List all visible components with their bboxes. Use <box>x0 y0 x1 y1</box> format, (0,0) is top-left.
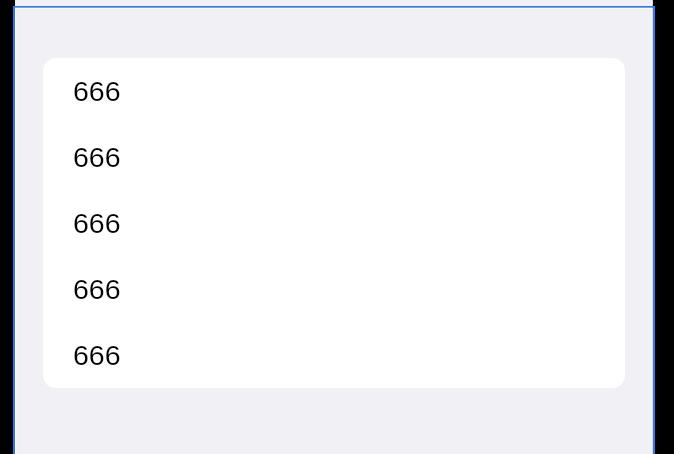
staticText: 666 <box>73 339 121 371</box>
staticText: 666 <box>73 207 121 239</box>
staticText: 666 <box>73 273 121 305</box>
button[interactable]: 666 <box>43 124 625 190</box>
staticText: 666 <box>73 75 121 107</box>
button[interactable]: 666 <box>43 256 625 322</box>
staticText: 666 <box>73 141 121 173</box>
button[interactable]: 666 <box>43 322 625 388</box>
button[interactable]: 666 <box>43 190 625 256</box>
button[interactable]: 666 <box>43 58 625 124</box>
